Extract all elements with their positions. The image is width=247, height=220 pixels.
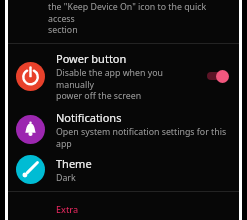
staticText: Dark [56, 172, 76, 184]
staticText: the "Keep Device On" icon to the quick a… [48, 1, 233, 35]
staticText: Disable the app when you manually power … [56, 67, 201, 101]
staticText: Open system notification settings for th… [56, 126, 233, 149]
staticText: Notifications [56, 110, 122, 125]
staticText: Power button [56, 51, 127, 66]
button[interactable]: Power button [8, 44, 239, 106]
staticText: Theme [56, 156, 92, 171]
button[interactable]: Toggle power button setting [205, 68, 233, 84]
button[interactable]: Notifications [8, 106, 239, 152]
staticText: Extra [56, 203, 79, 215]
button[interactable]: Theme [8, 152, 239, 191]
